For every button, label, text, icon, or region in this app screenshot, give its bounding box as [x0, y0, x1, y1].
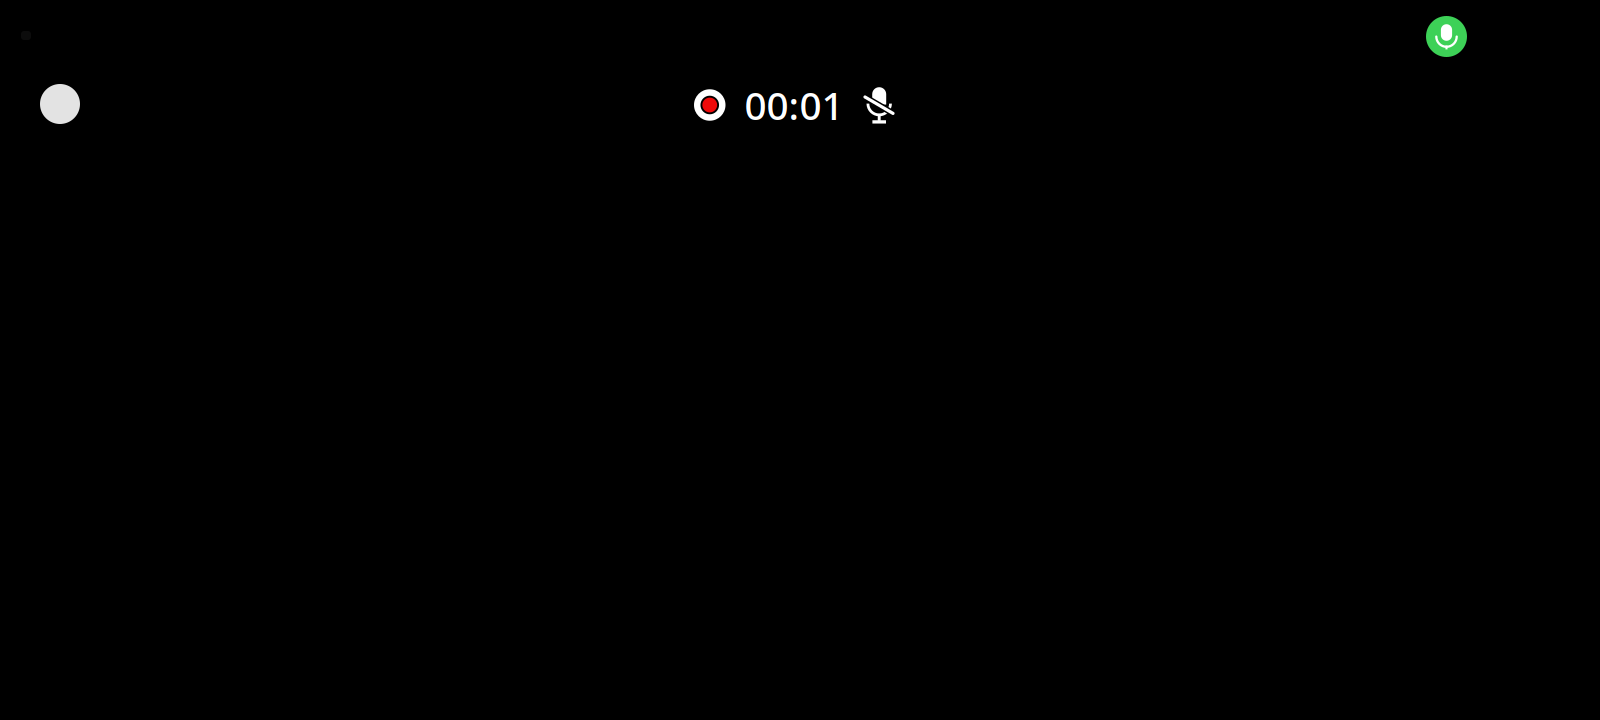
- staticText: 00:01: [744, 79, 843, 131]
- button[interactable]: Microphone: [1426, 16, 1467, 57]
- button[interactable]: Participant: [40, 84, 80, 124]
